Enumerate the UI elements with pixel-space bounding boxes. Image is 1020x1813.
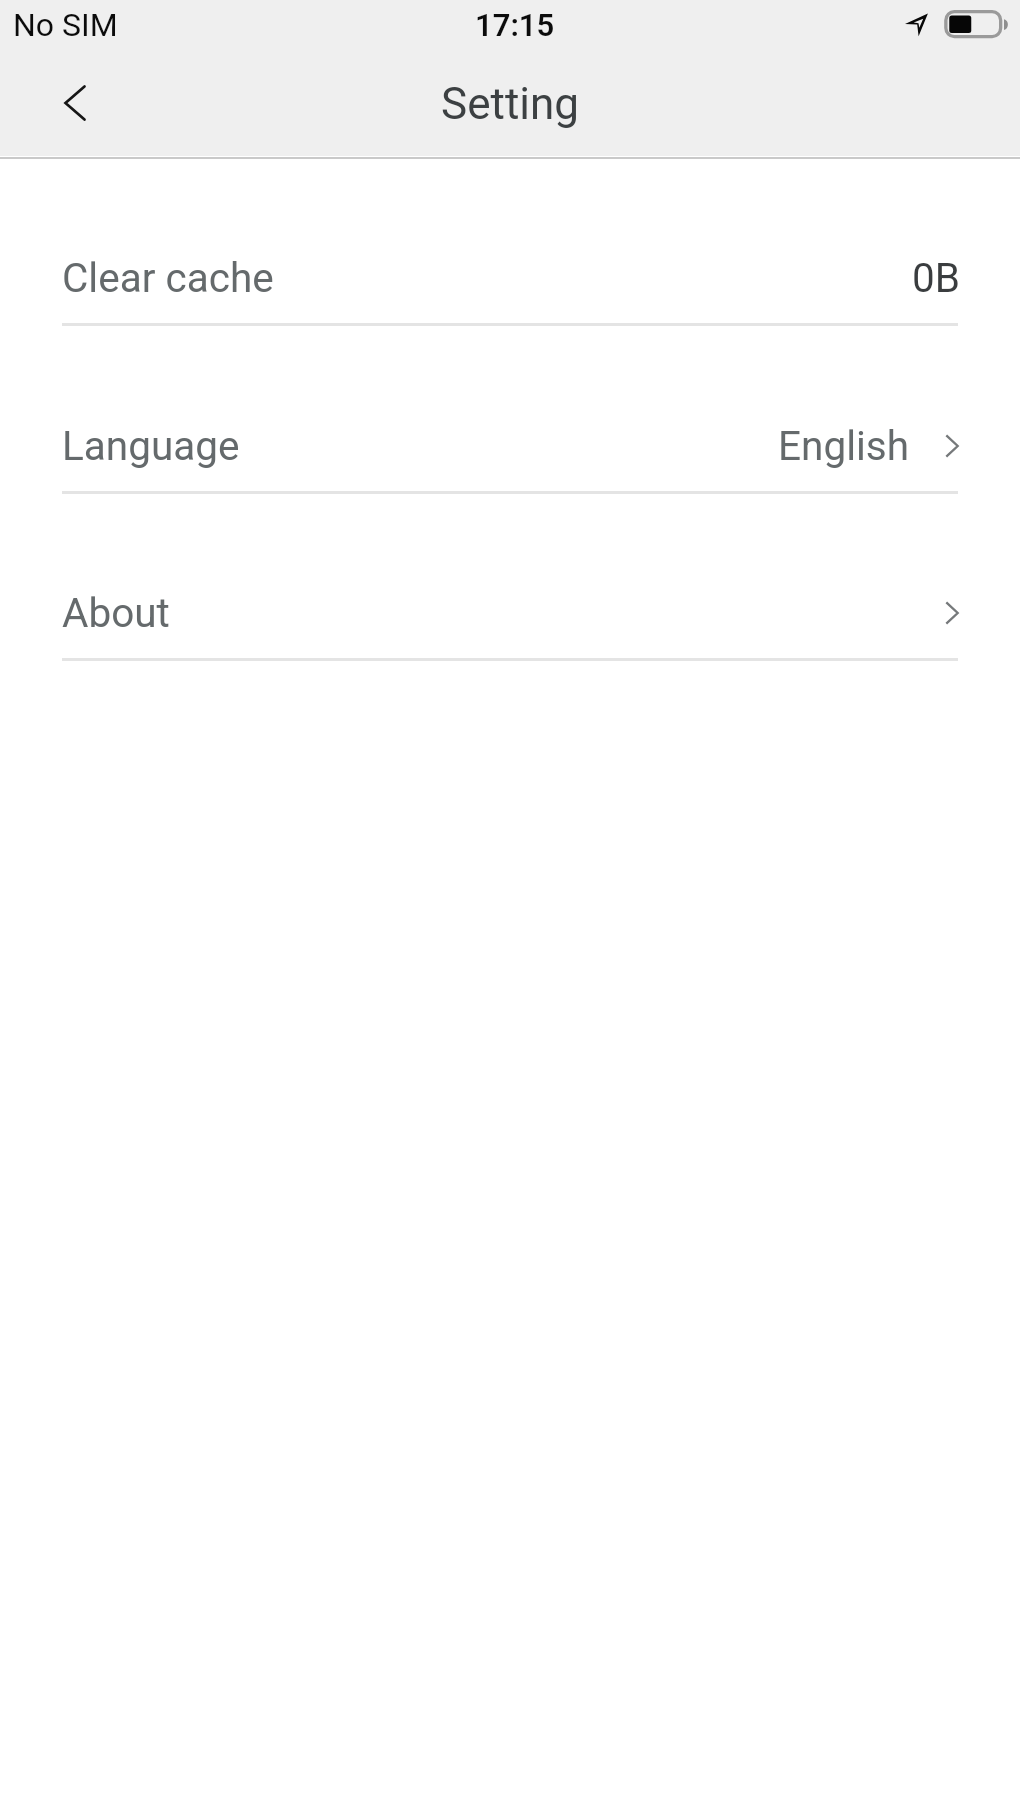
staticText: Language: [62, 422, 240, 469]
staticText: English: [778, 422, 910, 469]
staticText: Setting: [441, 78, 579, 130]
button[interactable]: About: [0, 571, 1020, 661]
staticText: About: [62, 589, 170, 636]
staticText: Clear cache: [62, 254, 274, 301]
other: Location services active: [903, 10, 931, 40]
staticText: 17:15: [475, 7, 555, 43]
button[interactable]: Clear cache: [0, 236, 1020, 326]
staticText: 0B: [912, 254, 960, 301]
other: Battery 40 percent: [942, 8, 1010, 44]
button[interactable]: Language: [0, 404, 1020, 494]
staticText: No SIM: [13, 6, 118, 44]
button[interactable]: Back: [40, 68, 110, 138]
